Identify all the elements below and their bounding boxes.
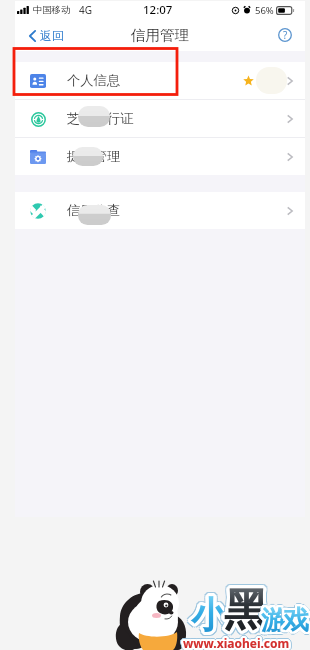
staticText: www.xiaohei.com bbox=[184, 638, 291, 650]
staticText: 游 bbox=[262, 606, 288, 639]
staticText: 戏 bbox=[282, 604, 308, 637]
staticText: 戏 bbox=[283, 603, 309, 636]
staticText: 中国移动 bbox=[33, 4, 71, 16]
staticText: 戏 bbox=[284, 603, 310, 636]
staticText: 戏 bbox=[283, 603, 309, 636]
staticText: www.xiaohei.com bbox=[185, 636, 292, 650]
staticText: 黑 bbox=[226, 585, 270, 640]
staticText: 黑 bbox=[221, 582, 265, 637]
staticText: www.xiaohei.com bbox=[181, 633, 288, 649]
staticText: www.xiaohei.com bbox=[181, 635, 288, 650]
staticText: 黑 bbox=[226, 587, 270, 642]
staticText: 黑 bbox=[227, 580, 271, 635]
staticText: www.xiaohei.com bbox=[185, 633, 292, 649]
staticText: www.xiaohei.com bbox=[181, 637, 288, 650]
staticText: 黑 bbox=[225, 584, 269, 639]
staticText: 小 bbox=[188, 593, 224, 638]
staticText: 游 bbox=[260, 604, 286, 637]
button[interactable]: 个人信息 bbox=[15, 62, 305, 99]
staticText: 戏 bbox=[282, 601, 308, 634]
staticText: 游 bbox=[260, 604, 286, 637]
staticText: 戏 bbox=[285, 606, 310, 639]
staticText: 黑 bbox=[227, 584, 271, 639]
staticText: 戏 bbox=[281, 602, 307, 635]
staticText: 游 bbox=[260, 602, 286, 635]
staticText: 游 bbox=[263, 606, 289, 639]
staticText: 游 bbox=[262, 604, 288, 637]
button[interactable]: Help bbox=[276, 26, 294, 44]
staticText: 黑 bbox=[223, 585, 267, 640]
staticText: 戏 bbox=[282, 607, 308, 640]
staticText: www.xiaohei.com bbox=[182, 632, 289, 648]
staticText: 戏 bbox=[282, 604, 308, 637]
staticText: 黑 bbox=[226, 584, 270, 639]
staticText: 小 bbox=[189, 591, 225, 636]
staticText: www.xiaohei.com bbox=[183, 636, 290, 650]
staticText: 信用分查 bbox=[67, 202, 121, 219]
staticText: 游 bbox=[263, 602, 289, 635]
staticText: 游 bbox=[259, 602, 285, 635]
staticText: 黑 bbox=[225, 582, 269, 637]
staticText: www.xiaohei.com bbox=[184, 635, 291, 650]
staticText: www.xiaohei.com bbox=[182, 635, 289, 650]
staticText: 小 bbox=[190, 591, 226, 636]
staticText: www.xiaohei.com bbox=[182, 636, 289, 650]
staticText: 黑 bbox=[222, 579, 266, 634]
staticText: 游 bbox=[260, 606, 286, 639]
staticText: 游 bbox=[258, 605, 284, 638]
staticText: 戏 bbox=[283, 605, 309, 638]
staticText: 小 bbox=[191, 595, 227, 640]
button[interactable]: 芝麻信行证 bbox=[15, 100, 305, 137]
staticText: www.xiaohei.com bbox=[181, 634, 288, 650]
staticText: 戏 bbox=[282, 603, 308, 636]
staticText: 游 bbox=[261, 605, 287, 638]
staticText: 小 bbox=[190, 589, 226, 634]
staticText: 黑 bbox=[222, 581, 266, 636]
staticText: 小 bbox=[191, 589, 227, 634]
staticText: 小 bbox=[193, 591, 229, 636]
staticText: 小 bbox=[188, 589, 224, 634]
button[interactable]: 信用分查 bbox=[15, 192, 305, 229]
staticText: www.xiaohei.com bbox=[183, 634, 290, 650]
staticText: www.xiaohei.com bbox=[182, 634, 289, 650]
staticText: 小 bbox=[189, 596, 225, 641]
staticText: 游 bbox=[261, 605, 287, 638]
staticText: 小 bbox=[192, 590, 228, 635]
staticText: 小 bbox=[192, 595, 228, 640]
staticText: www.xiaohei.com bbox=[183, 634, 290, 650]
staticText: 戏 bbox=[286, 603, 310, 636]
staticText: 游 bbox=[262, 605, 288, 638]
staticText: 小 bbox=[191, 588, 227, 633]
staticText: 黑 bbox=[223, 582, 267, 637]
staticText: www.xiaohei.com bbox=[185, 635, 292, 650]
staticText: 黑 bbox=[224, 585, 268, 640]
button[interactable]: 返回 bbox=[29, 28, 64, 43]
staticText: www.xiaohei.com bbox=[184, 635, 291, 650]
staticText: 戏 bbox=[280, 603, 306, 636]
staticText: www.xiaohei.com bbox=[186, 635, 293, 650]
staticText: 小 bbox=[188, 592, 224, 637]
staticText: 小 bbox=[193, 592, 229, 637]
staticText: 戏 bbox=[282, 606, 308, 639]
button[interactable]: 提额管理 bbox=[15, 138, 305, 175]
staticText: 游 bbox=[260, 605, 286, 638]
staticText: 黑 bbox=[225, 586, 269, 641]
staticText: 小 bbox=[195, 592, 231, 637]
staticText: 游 bbox=[262, 604, 288, 637]
staticText: www.xiaohei.com bbox=[182, 635, 289, 650]
staticText: 游 bbox=[262, 607, 288, 640]
staticText: www.xiaohei.com bbox=[184, 633, 291, 649]
staticText: 黑 bbox=[224, 580, 268, 635]
staticText: 游 bbox=[261, 607, 287, 640]
staticText: 戏 bbox=[283, 603, 309, 636]
staticText: 小 bbox=[192, 593, 228, 638]
staticText: 小 bbox=[189, 592, 225, 637]
staticText: 小 bbox=[194, 589, 230, 634]
staticText: 戏 bbox=[281, 603, 307, 636]
staticText: 戏 bbox=[285, 602, 310, 635]
staticText: 黑 bbox=[226, 582, 270, 637]
staticText: 黑 bbox=[228, 585, 272, 640]
staticText: 戏 bbox=[285, 606, 310, 639]
staticText: 游 bbox=[259, 606, 285, 639]
staticText: www.xiaohei.com bbox=[182, 636, 289, 650]
